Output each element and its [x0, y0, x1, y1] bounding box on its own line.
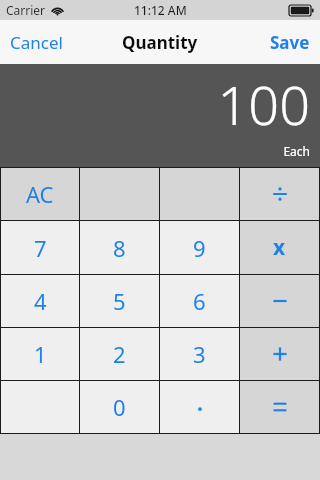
staticText: Quantity [122, 31, 198, 54]
staticText: Carrier [6, 2, 46, 18]
button[interactable]: Add [240, 328, 319, 380]
button[interactable]: Cancel [0, 20, 73, 64]
button[interactable]: 2 [80, 328, 159, 380]
button[interactable]: 6 [160, 275, 239, 327]
other: Equals [269, 396, 291, 418]
staticText: 1 [34, 339, 47, 369]
staticText: 11:12 AM [134, 2, 187, 18]
staticText: AC [26, 179, 54, 209]
staticText: 2 [113, 339, 126, 369]
other: Divide [269, 183, 291, 205]
staticText: 7 [34, 233, 47, 263]
button[interactable]: Subtract [240, 275, 319, 327]
staticText: 0 [113, 392, 126, 422]
button[interactable]: Save [260, 20, 320, 64]
button[interactable]: Decimal point [160, 381, 239, 433]
button[interactable]: Multiply [240, 221, 319, 274]
button[interactable]: 8 [80, 221, 159, 274]
staticText: x [273, 233, 286, 262]
button[interactable]: 0 [80, 381, 159, 433]
staticText: Each [283, 143, 310, 159]
staticText: 5 [113, 286, 126, 316]
button[interactable]: Equals [240, 381, 319, 433]
button[interactable]: Divide [240, 168, 319, 220]
staticText: 9 [193, 233, 206, 263]
staticText: 3 [193, 339, 206, 369]
button[interactable]: 4 [1, 275, 79, 327]
staticText: 6 [193, 286, 206, 316]
other: Add [269, 343, 291, 365]
button[interactable]: 1 [1, 328, 79, 380]
button[interactable]: 5 [80, 275, 159, 327]
staticText: Save [270, 31, 310, 54]
staticText: 100 [217, 67, 310, 141]
staticText: 4 [34, 286, 47, 316]
staticText: 8 [113, 233, 126, 263]
button[interactable]: AC [1, 168, 79, 220]
button[interactable]: 3 [160, 328, 239, 380]
other: Decimal point [191, 398, 209, 416]
button[interactable]: 7 [1, 221, 79, 274]
other: Subtract [269, 290, 291, 312]
button[interactable]: 9 [160, 221, 239, 274]
staticText: Cancel [10, 31, 63, 54]
